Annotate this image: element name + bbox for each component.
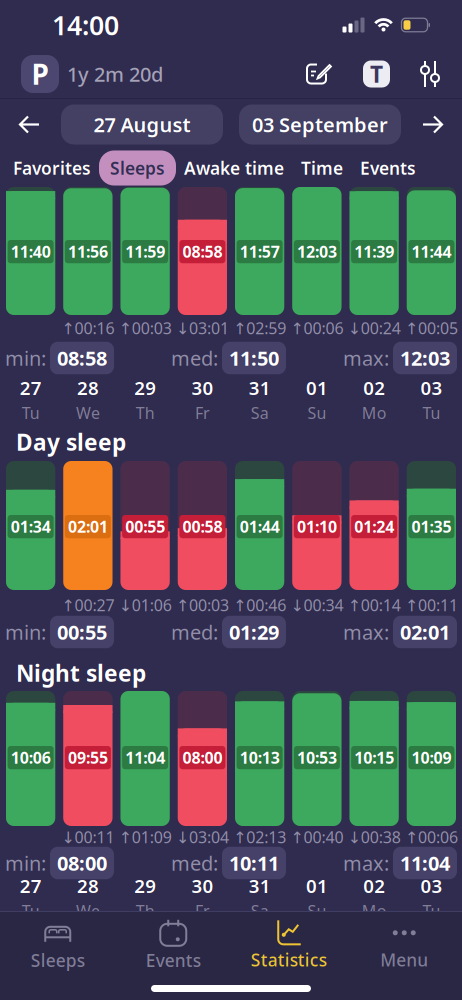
staticText: ↑00:27 bbox=[61, 594, 114, 616]
button[interactable]: 10:15 bbox=[349, 691, 399, 826]
staticText: 01:10 bbox=[297, 516, 337, 537]
staticText: Events bbox=[360, 156, 416, 179]
staticText: med: bbox=[171, 345, 218, 371]
button[interactable]: Menu bbox=[346, 920, 462, 971]
button[interactable]: 01:44 bbox=[235, 461, 284, 590]
staticText: 08:58 bbox=[182, 241, 222, 262]
staticText: 02:01 bbox=[68, 516, 108, 537]
button[interactable]: 01:35 bbox=[407, 461, 456, 590]
button[interactable]: 10:13 bbox=[235, 691, 284, 826]
button[interactable]: 02:01 bbox=[63, 461, 112, 590]
staticText: 01:34 bbox=[11, 516, 51, 537]
staticText: Statistics bbox=[251, 948, 327, 971]
button[interactable]: 11:04 bbox=[120, 691, 170, 826]
button[interactable]: 11:57 bbox=[235, 187, 284, 315]
staticText: 30 bbox=[191, 375, 213, 400]
staticText: 00:55 bbox=[125, 516, 165, 537]
staticText: Menu bbox=[380, 948, 428, 971]
button[interactable]: P bbox=[21, 55, 163, 93]
button[interactable]: 10:09 bbox=[407, 691, 456, 826]
button[interactable]: 09:55 bbox=[63, 691, 112, 826]
staticText: 08:58 bbox=[57, 345, 107, 371]
button[interactable]: Awake time bbox=[184, 156, 284, 179]
staticText: 28 bbox=[77, 873, 99, 898]
staticText: ↓01:06 bbox=[119, 594, 172, 616]
staticText: Awake time bbox=[184, 156, 284, 179]
staticText: 12:03 bbox=[400, 345, 450, 371]
staticText: 03 bbox=[420, 873, 442, 898]
button[interactable]: 01:34 bbox=[6, 461, 55, 590]
staticText: 03 bbox=[420, 375, 442, 400]
staticText: Tu bbox=[422, 402, 440, 423]
button[interactable]: 03 September bbox=[239, 104, 401, 144]
staticText: Su bbox=[307, 402, 326, 423]
button[interactable]: 10:53 bbox=[292, 691, 341, 826]
button[interactable]: Edit bbox=[304, 59, 334, 89]
staticText: Mo bbox=[362, 402, 387, 423]
staticText: 00:58 bbox=[182, 516, 222, 537]
staticText: 10:09 bbox=[411, 747, 451, 768]
staticText: ↑00:06 bbox=[405, 826, 458, 848]
staticText: Fr bbox=[195, 402, 210, 423]
staticText: 11:59 bbox=[125, 241, 165, 262]
staticText: T bbox=[370, 59, 383, 89]
button[interactable]: 08:00 bbox=[178, 691, 227, 826]
button[interactable]: Previous week bbox=[0, 114, 40, 134]
staticText: 14:00 bbox=[52, 7, 119, 43]
button[interactable]: 11:59 bbox=[120, 187, 170, 315]
staticText: Night sleep bbox=[16, 658, 146, 688]
button[interactable]: Sleeps bbox=[0, 920, 115, 972]
button[interactable]: 27 August bbox=[61, 104, 223, 144]
staticText: 27 bbox=[20, 375, 42, 400]
staticText: Su bbox=[307, 900, 326, 921]
staticText: 11:44 bbox=[411, 241, 451, 262]
staticText: 03 September bbox=[252, 111, 388, 138]
button[interactable]: Events bbox=[360, 156, 416, 179]
staticText: ↑00:05 bbox=[405, 317, 458, 339]
staticText: ↓00:38 bbox=[348, 826, 401, 848]
staticText: 01:29 bbox=[229, 619, 279, 645]
staticText: 08:00 bbox=[57, 850, 107, 876]
button[interactable]: 10:06 bbox=[6, 691, 55, 826]
button[interactable]: Text size bbox=[363, 59, 390, 89]
button[interactable]: Filters bbox=[419, 59, 441, 89]
button[interactable]: 01:24 bbox=[349, 461, 399, 590]
staticText: 11:57 bbox=[240, 241, 280, 262]
button[interactable]: 00:55 bbox=[120, 461, 170, 590]
staticText: 10:15 bbox=[354, 747, 394, 768]
staticText: Sleeps bbox=[110, 156, 165, 179]
staticText: ↓03:01 bbox=[176, 317, 229, 339]
staticText: 12:03 bbox=[297, 241, 337, 262]
staticText: Mo bbox=[362, 900, 387, 921]
staticText: ↓03:04 bbox=[176, 826, 229, 848]
button[interactable]: 11:39 bbox=[349, 187, 399, 315]
button[interactable]: 00:58 bbox=[178, 461, 227, 590]
staticText: ↓00:24 bbox=[348, 317, 401, 339]
staticText: ↑00:03 bbox=[176, 594, 229, 616]
staticText: Th bbox=[136, 900, 155, 921]
button[interactable]: Statistics bbox=[231, 920, 346, 971]
button[interactable]: 12:03 bbox=[292, 187, 341, 315]
button[interactable]: 01:10 bbox=[292, 461, 341, 590]
button[interactable]: 11:40 bbox=[6, 187, 55, 315]
staticText: ↑00:03 bbox=[119, 317, 172, 339]
button[interactable]: Events bbox=[115, 920, 231, 972]
staticText: 00:55 bbox=[57, 619, 107, 645]
button[interactable]: Time bbox=[301, 156, 343, 179]
staticText: 10:53 bbox=[297, 747, 337, 768]
button[interactable]: 11:56 bbox=[63, 187, 112, 315]
staticText: ↑00:06 bbox=[290, 317, 343, 339]
staticText: Sa bbox=[251, 402, 269, 423]
button[interactable]: Next week bbox=[422, 114, 462, 134]
staticText: 10:11 bbox=[229, 850, 279, 876]
staticText: 28 bbox=[77, 375, 99, 400]
staticText: min: bbox=[5, 850, 46, 876]
staticText: Sleeps bbox=[31, 949, 85, 972]
button[interactable]: 11:44 bbox=[407, 187, 456, 315]
staticText: max: bbox=[343, 345, 389, 371]
staticText: 02 bbox=[363, 375, 385, 400]
button[interactable]: Sleeps bbox=[99, 150, 176, 185]
button[interactable]: 08:58 bbox=[178, 187, 227, 315]
button[interactable]: Favorites bbox=[13, 156, 91, 179]
staticText: ↓00:11 bbox=[61, 826, 114, 848]
